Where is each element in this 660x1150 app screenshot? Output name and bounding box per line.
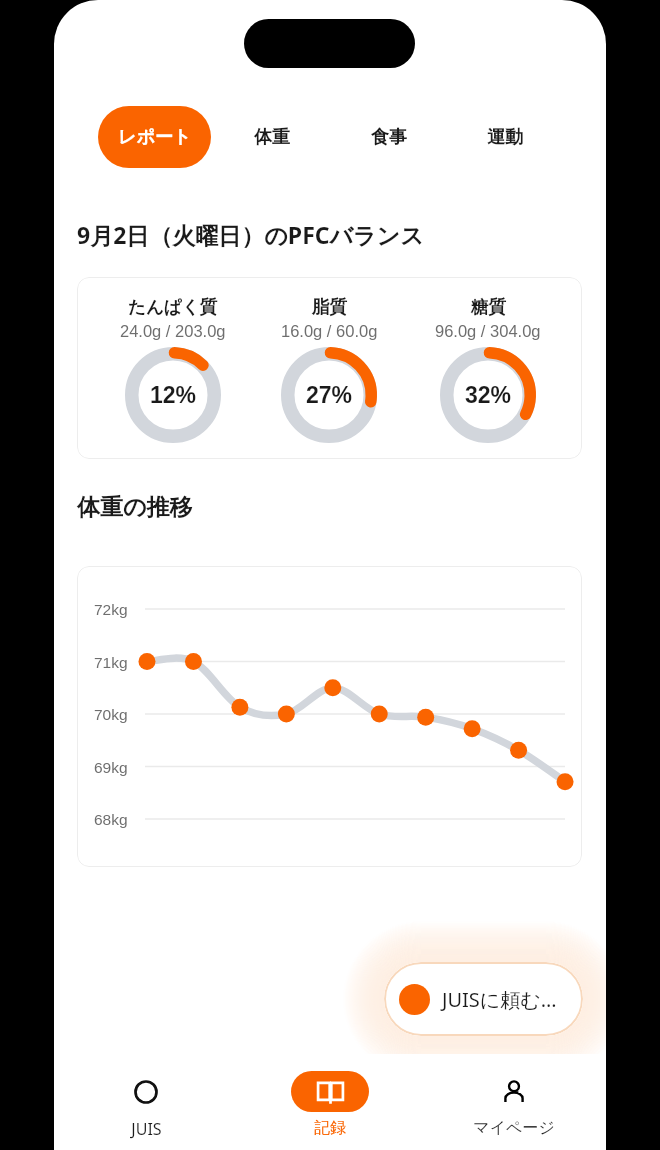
other: JUIS: [125, 1071, 167, 1112]
button[interactable]: Records: [238, 1054, 422, 1138]
staticText: 72kg: [94, 601, 128, 618]
staticText: 糖質: [471, 296, 506, 318]
staticText: 71kg: [94, 654, 128, 671]
staticText: 脂質: [312, 296, 347, 318]
button[interactable]: レポート: [98, 106, 211, 168]
staticText: 記録: [314, 1118, 346, 1138]
button[interactable]: My Page: [422, 1054, 606, 1138]
button[interactable]: 運動: [477, 112, 533, 163]
staticText: 68kg: [94, 811, 128, 828]
staticText: 96.0g / 304.0g: [435, 322, 541, 340]
button[interactable]: 食事: [361, 112, 417, 163]
other: Records: [291, 1071, 369, 1112]
staticText: 食事: [371, 126, 407, 149]
staticText: 体重: [254, 126, 290, 149]
staticText: 12%: [150, 382, 197, 408]
staticText: 27%: [306, 382, 353, 408]
staticText: 69kg: [94, 759, 128, 776]
staticText: マイページ: [473, 1118, 555, 1138]
staticText: JUIS: [131, 1118, 162, 1140]
button[interactable]: JUISに頼む…: [384, 962, 583, 1036]
staticText: 運動: [487, 126, 523, 149]
staticText: 32%: [465, 382, 512, 408]
staticText: 9月2日（火曜日）のPFCバランス: [77, 219, 424, 250]
staticText: JUISに頼む…: [442, 986, 557, 1013]
staticText: 体重の推移: [77, 493, 193, 522]
staticText: 24.0g / 203.0g: [120, 322, 226, 340]
other: My Page: [493, 1071, 535, 1112]
staticText: 70kg: [94, 706, 128, 723]
staticText: 16.0g / 60.0g: [281, 322, 378, 340]
button[interactable]: JUIS: [54, 1054, 238, 1140]
staticText: レポート: [118, 126, 192, 149]
staticText: たんぱく質: [128, 296, 218, 318]
button[interactable]: 体重: [244, 112, 300, 163]
